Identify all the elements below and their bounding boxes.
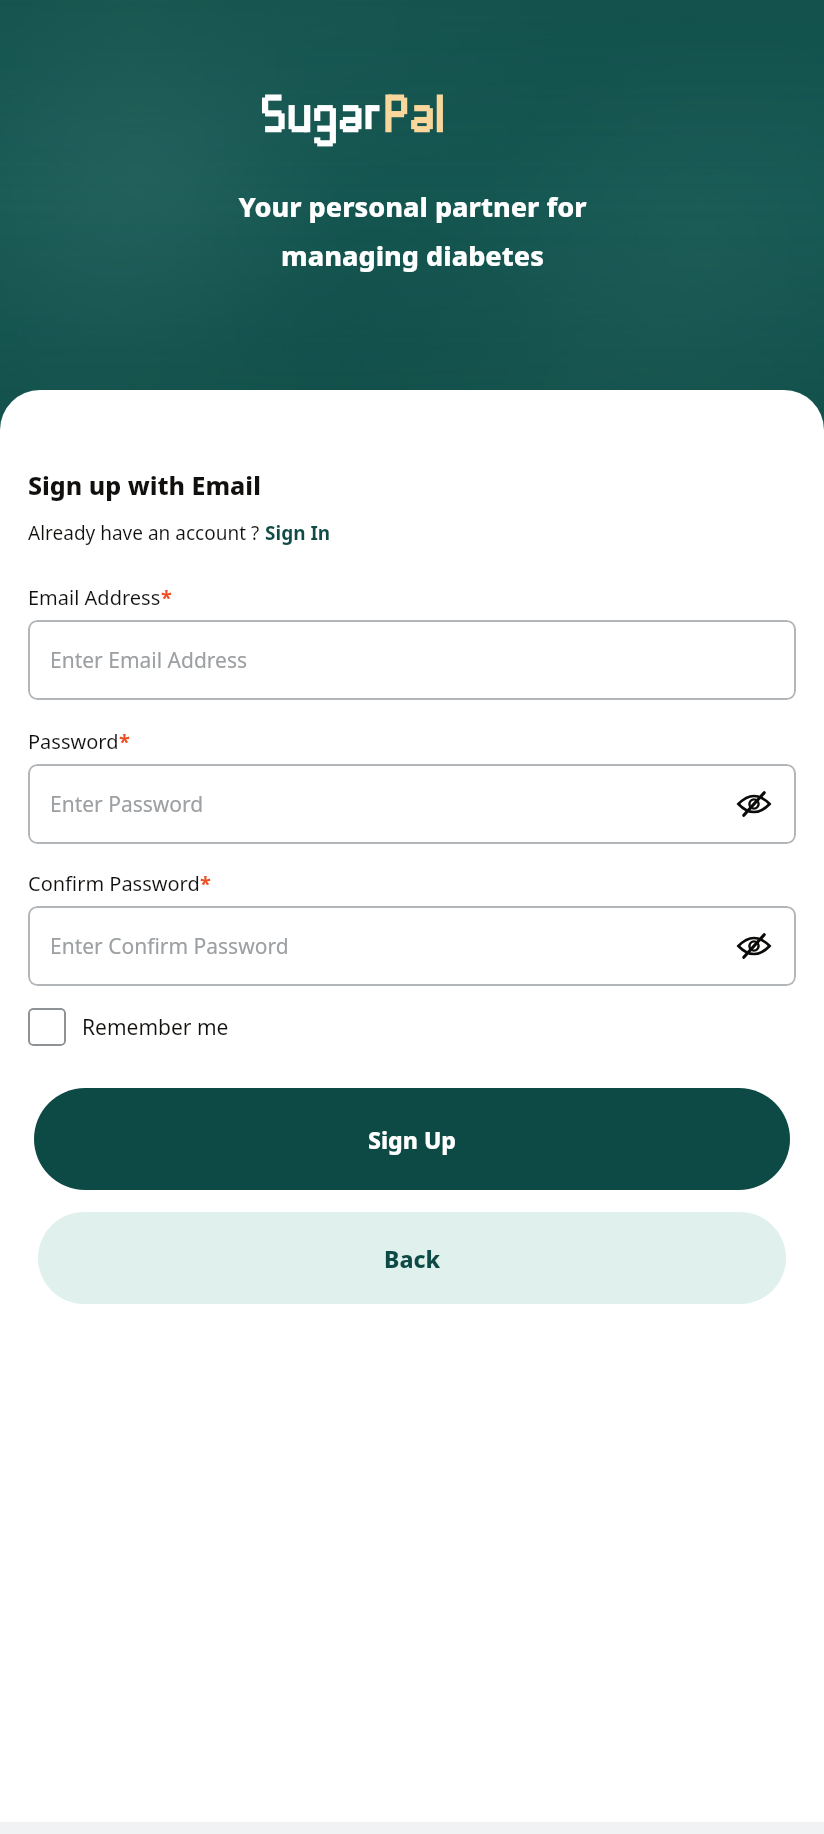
staticText: * [200,870,211,897]
button[interactable]: Sign Up [34,1088,790,1190]
staticText: Enter Confirm Password [50,932,289,961]
staticText: Password [28,728,119,755]
button[interactable]: Show password [734,784,774,824]
staticText: Enter Password [50,790,204,819]
staticText: * [161,584,172,611]
staticText: Email Address [28,584,161,611]
button[interactable]: Remember me [28,1008,229,1046]
staticText: Enter Email Address [50,646,248,675]
button[interactable]: Show password [734,926,774,966]
staticText: Confirm Password [28,870,200,897]
staticText: Remember me [82,1013,229,1042]
staticText: managing diabetes [281,237,544,274]
staticText: Sign Up [368,1124,456,1155]
staticText: * [119,728,130,755]
staticText: Sign In [265,520,331,546]
staticText: Sign up with Email [28,468,261,502]
button[interactable]: Sign In [265,520,331,546]
button[interactable]: Enter Confirm Password [28,906,796,986]
button[interactable]: Back [38,1212,786,1304]
button[interactable]: Enter Email Address [28,620,796,700]
staticText: Back [384,1243,441,1274]
staticText: Your personal partner for [238,188,587,225]
staticText: Already have an account ? [28,520,265,546]
button[interactable]: Enter Password [28,764,796,844]
